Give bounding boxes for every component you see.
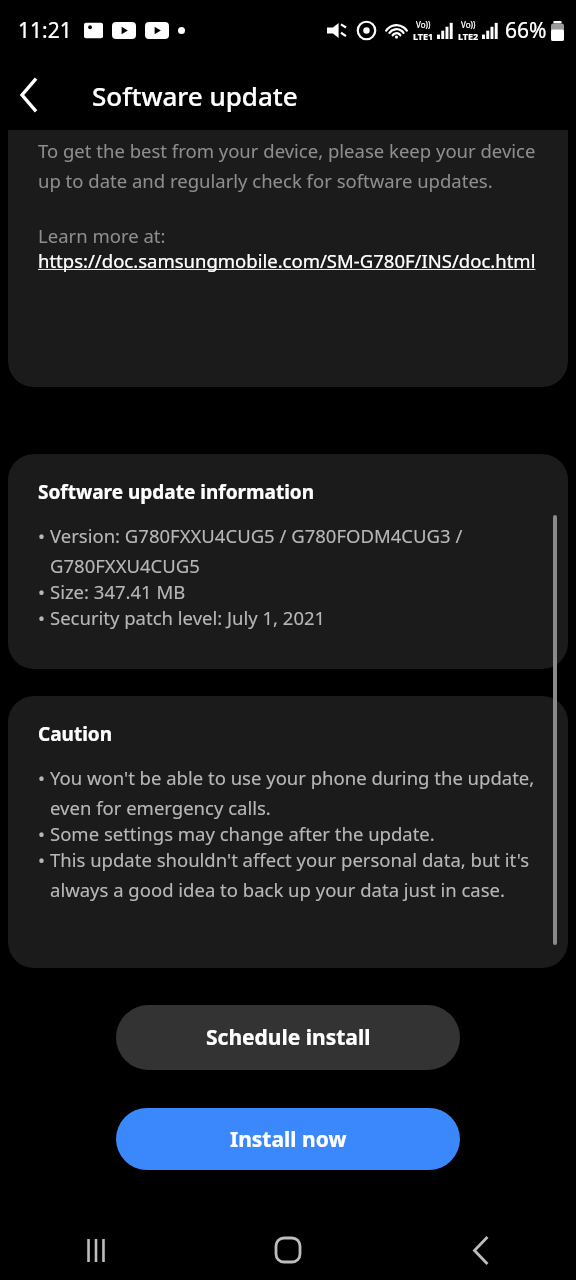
staticText: •	[38, 765, 45, 790]
staticText: Install now	[230, 1125, 347, 1154]
staticText: Vo))	[461, 19, 476, 30]
staticText: 11:21	[18, 16, 72, 45]
button[interactable]: Back	[384, 1220, 576, 1280]
staticText: Some settings may change after the updat…	[50, 821, 435, 846]
button[interactable]: Recent apps	[0, 1220, 192, 1280]
staticText: •	[38, 821, 45, 846]
staticText: This update shouldn't affect your person…	[50, 847, 546, 902]
staticText: Caution	[38, 721, 113, 747]
staticText: You won't be able to use your phone duri…	[50, 765, 546, 820]
staticText: LTE2	[458, 30, 479, 42]
staticText: Vo))	[416, 19, 431, 30]
staticText: LTE1	[413, 30, 434, 42]
button[interactable]: Back	[0, 67, 56, 123]
staticText: Size: 347.41 MB	[50, 579, 186, 604]
button[interactable]: Schedule install	[116, 1005, 460, 1070]
staticText: •	[38, 523, 45, 548]
staticText: •	[38, 579, 45, 604]
button[interactable]: Install now	[116, 1108, 460, 1170]
staticText: 66%	[505, 16, 547, 45]
staticText: •	[38, 605, 45, 630]
staticText: Software update	[92, 78, 298, 113]
button[interactable]: Home	[192, 1220, 384, 1280]
staticText: Version: G780FXXU4CUG5 / G780FODM4CUG3 /…	[50, 523, 542, 578]
staticText: Learn more at:	[38, 223, 166, 248]
staticText: •	[38, 847, 45, 872]
staticText: Software update information	[38, 479, 315, 505]
staticText: To get the best from your device, please…	[38, 138, 546, 193]
staticText: Security patch level: July 1, 2021	[50, 605, 326, 630]
staticText: Schedule install	[206, 1023, 371, 1052]
button[interactable]: https://doc.samsungmobile.com/SM-G780F/I…	[38, 248, 536, 273]
